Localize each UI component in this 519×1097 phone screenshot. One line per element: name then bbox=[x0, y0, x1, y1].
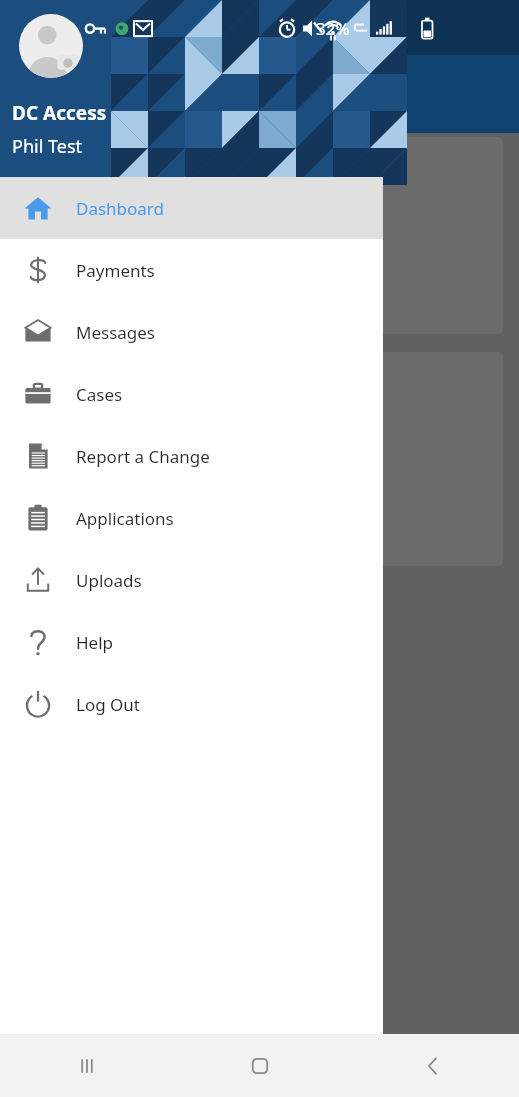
staticText: and docs ready bbox=[30, 486, 145, 508]
button[interactable]: Renew application bbox=[16, 352, 503, 566]
staticText: Apply for Assistance bbox=[30, 199, 191, 222]
button[interactable]: Uploads bbox=[0, 549, 383, 611]
staticText: Help bbox=[76, 631, 114, 654]
staticText: Report a Change bbox=[76, 445, 210, 468]
staticText: applications and bbox=[30, 250, 154, 272]
staticText: Phil Test bbox=[12, 134, 83, 159]
button[interactable]: Profile photo bbox=[19, 14, 83, 78]
staticText: Log Out bbox=[76, 693, 140, 716]
staticText: Have your information bbox=[30, 461, 200, 483]
button[interactable]: Cases bbox=[0, 363, 383, 425]
button[interactable]: Recent apps bbox=[0, 1034, 173, 1097]
staticText: 32% bbox=[316, 17, 350, 40]
staticText: Payments bbox=[76, 259, 155, 282]
button[interactable]: Payments bbox=[0, 239, 383, 301]
button[interactable]: Home bbox=[173, 1034, 346, 1097]
button[interactable]: Help bbox=[0, 611, 383, 673]
staticText: DC Access bbox=[12, 100, 107, 126]
staticText: Applications bbox=[76, 507, 174, 530]
staticText: Cases bbox=[76, 383, 123, 406]
button[interactable]: Dashboard bbox=[0, 177, 383, 239]
button[interactable]: Messages bbox=[0, 301, 383, 363]
button[interactable]: Apply for Assistance bbox=[16, 137, 503, 334]
button[interactable]: Log Out bbox=[0, 673, 383, 735]
staticText: Submit your bbox=[30, 225, 122, 247]
staticText: Dashboard bbox=[76, 197, 165, 220]
button[interactable]: Applications bbox=[0, 487, 383, 549]
staticText: Uploads bbox=[76, 569, 142, 592]
staticText: Messages bbox=[76, 321, 156, 344]
button[interactable]: Back bbox=[346, 1034, 519, 1097]
staticText: Renew your application bbox=[30, 436, 206, 458]
button[interactable]: Report a Change bbox=[0, 425, 383, 487]
